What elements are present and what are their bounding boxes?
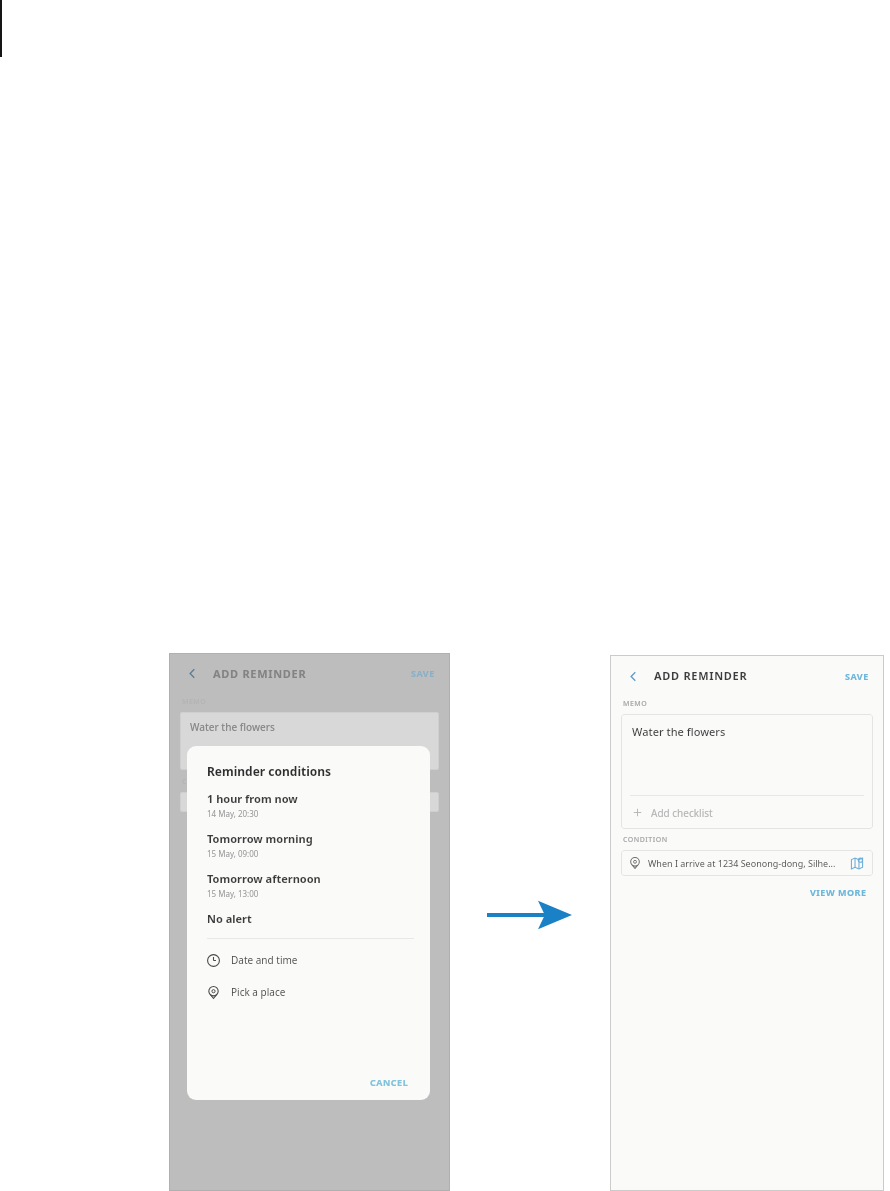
button[interactable]: No alert bbox=[207, 911, 414, 926]
button[interactable]: SAVE bbox=[842, 668, 872, 684]
button[interactable] bbox=[180, 792, 439, 812]
button[interactable]: CANCEL bbox=[365, 1072, 414, 1092]
button[interactable]: Add checklist bbox=[621, 796, 873, 829]
staticText: 14 May, 20:30 bbox=[207, 808, 259, 819]
staticText: No alert bbox=[207, 911, 252, 926]
staticText: When I arrive at 1234 Seonong-dong, Silh… bbox=[648, 857, 844, 869]
button[interactable]: Tomorrow afternoon bbox=[207, 871, 414, 899]
staticText: SAVE bbox=[411, 667, 435, 679]
staticText: MEMO bbox=[623, 699, 648, 709]
button[interactable]: VIEW MORE bbox=[806, 883, 871, 901]
staticText: CONDITION bbox=[623, 835, 668, 845]
staticText: SAVE bbox=[845, 670, 869, 682]
staticText: ADD REMINDER bbox=[213, 666, 307, 681]
button[interactable]: When I arrive at 1234 Seonong-dong, Silh… bbox=[621, 850, 873, 876]
staticText: 15 May, 13:00 bbox=[207, 888, 259, 899]
button[interactable]: Back bbox=[622, 665, 644, 687]
button[interactable]: Water the flowers bbox=[180, 712, 439, 770]
staticText: CANCEL bbox=[370, 1076, 409, 1088]
staticText: Water the flowers bbox=[632, 724, 726, 739]
staticText: 1 hour from now bbox=[207, 791, 298, 806]
staticText: ADD REMINDER bbox=[654, 668, 748, 683]
button[interactable]: 1 hour from now bbox=[207, 791, 414, 819]
button[interactable]: Back bbox=[181, 662, 203, 684]
staticText: VIEW MORE bbox=[810, 886, 867, 898]
staticText: Add checklist bbox=[651, 806, 713, 820]
button[interactable]: Date and time bbox=[207, 950, 414, 970]
button[interactable]: Open map bbox=[849, 855, 865, 871]
staticText: Date and time bbox=[231, 953, 298, 967]
button[interactable]: Pick a place bbox=[207, 982, 414, 1002]
staticText: Water the flowers bbox=[190, 720, 275, 734]
button[interactable]: Tomorrow morning bbox=[207, 831, 414, 859]
staticText: 15 May, 09:00 bbox=[207, 848, 259, 859]
button[interactable]: Water the flowers bbox=[621, 714, 873, 795]
staticText: Reminder conditions bbox=[207, 763, 332, 779]
button[interactable]: SAVE bbox=[408, 665, 438, 681]
staticText: Tomorrow afternoon bbox=[207, 871, 321, 886]
staticText: Pick a place bbox=[231, 985, 286, 999]
staticText: Tomorrow morning bbox=[207, 831, 313, 846]
staticText: CONDITION bbox=[182, 777, 227, 787]
